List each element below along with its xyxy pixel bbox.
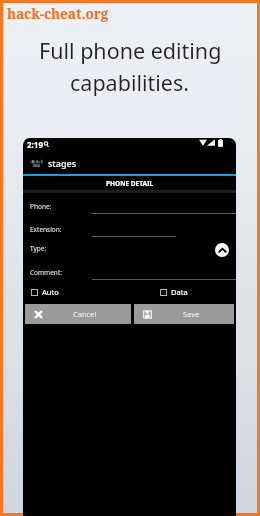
staticText: Full phone editing [39,36,222,65]
staticText: Type: [30,244,47,253]
staticText: Phone: [30,202,52,211]
staticText: Save [183,309,200,319]
staticText: stages [48,157,77,169]
staticText: Data [171,287,188,297]
button[interactable]: Cancel [25,304,131,324]
button[interactable]: Data [157,284,191,300]
button[interactable]: Type dropdown [215,243,229,257]
staticText: Comment: [30,268,62,277]
staticText: Extension: [30,225,62,234]
staticText: Cancel [73,309,97,319]
staticText: PHONE DETAIL [106,179,154,188]
staticText: Auto [42,287,59,297]
staticText: capabilities. [70,68,190,97]
button[interactable]: Auto [28,284,62,300]
button[interactable]: Save [134,304,234,324]
staticText: hack-cheat.org [7,5,109,23]
staticText: 2:19 [27,139,43,150]
